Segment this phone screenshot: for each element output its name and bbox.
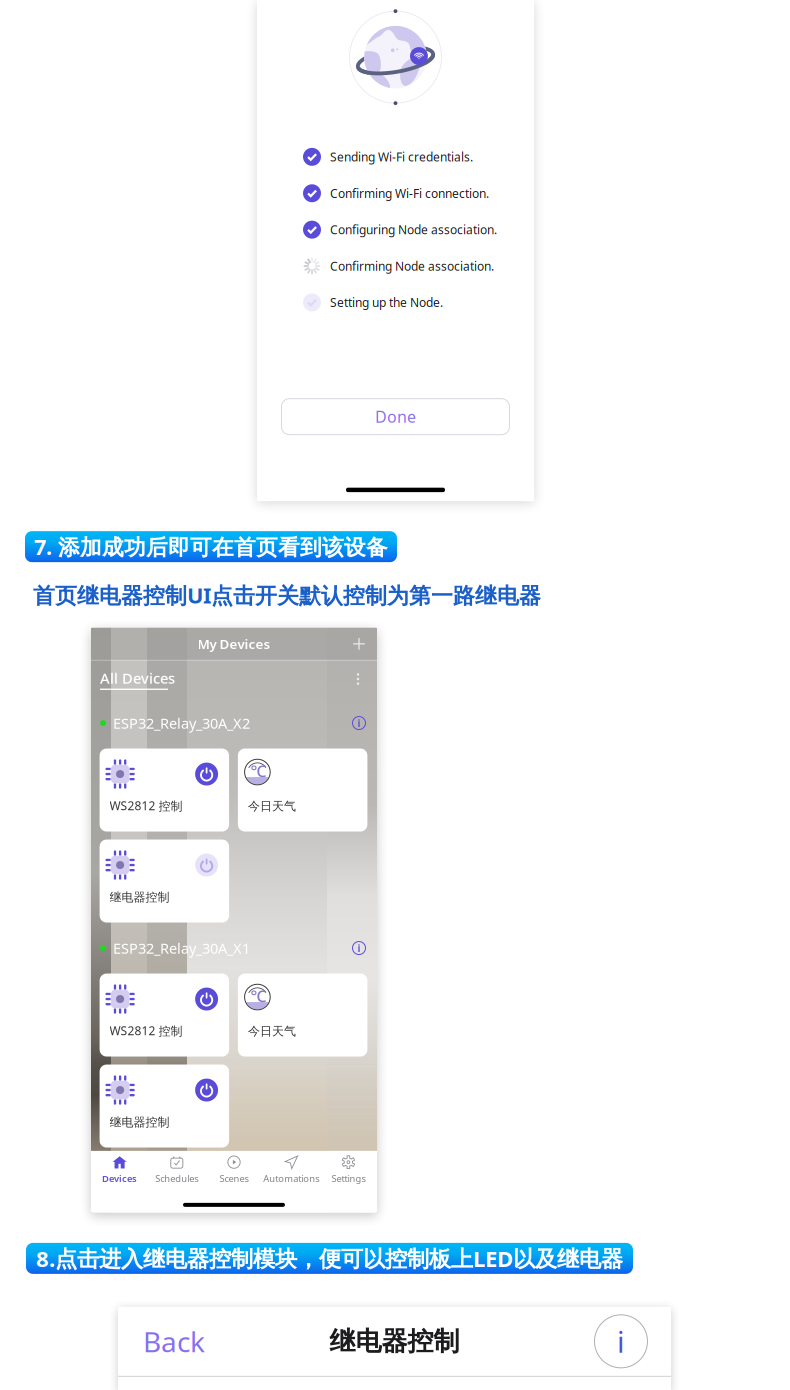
staticText: Devices [102,1172,137,1184]
staticText: Schedules [155,1172,198,1184]
button[interactable]: 继电器控制 [100,839,229,922]
button[interactable]: Done [281,399,509,435]
button[interactable]: Settings [320,1155,377,1184]
staticText: 继电器控制 [110,890,170,904]
staticText: My Devices [197,635,270,653]
staticText: ESP32_Relay_30A_X2 [113,713,250,733]
staticText: Confirming Node association. [330,258,494,274]
button[interactable]: More options [347,668,369,690]
staticText: 今日天气 [248,1024,296,1038]
button[interactable]: ℃ [238,748,367,831]
staticText: 继电器控制 [110,1115,170,1129]
staticText: Confirming Wi-Fi connection. [330,185,489,201]
staticText: 7. 添加成功后即可在首页看到该设备 [34,532,388,561]
staticText: Sending Wi-Fi credentials. [330,149,473,165]
button[interactable]: ℃ [238,973,367,1056]
staticText: Done [375,406,416,427]
staticText: 首页继电器控制UI点击开关默认控制为第一路继电器 [33,580,541,610]
staticText: 继电器控制 [329,1325,459,1358]
staticText: Setting up the Node. [330,294,443,310]
staticText: Configuring Node association. [330,222,497,238]
button[interactable]: Automations [263,1155,320,1184]
button[interactable]: All Devices [100,668,168,690]
button[interactable]: Devices [91,1155,148,1184]
button[interactable]: WS2812 控制 [100,973,229,1056]
staticText: ℃ [251,985,267,1006]
button[interactable]: 继电器控制 [100,1064,229,1147]
button[interactable]: Device info [350,939,368,957]
staticText: WS2812 控制 [110,797,183,813]
button[interactable]: Scenes [205,1155,263,1184]
button[interactable]: WS2812 控制 [100,748,229,831]
staticText: Back [143,1322,205,1360]
staticText: WS2812 控制 [110,1022,183,1038]
staticText: Settings [331,1172,365,1184]
staticText: ESP32_Relay_30A_X1 [113,938,250,958]
button[interactable]: Schedules [148,1155,205,1184]
staticText: i [357,941,360,955]
staticText: i [357,716,360,730]
button[interactable]: Device info [350,714,368,732]
button[interactable]: Back [143,1322,205,1360]
staticText: i [617,1321,625,1361]
staticText: All Devices [100,668,175,688]
button[interactable]: Info [593,1313,649,1369]
staticText: ℃ [251,760,267,781]
staticText: 今日天气 [248,799,296,813]
staticText: 8.点击进入继电器控制模块，便可以控制板上LED以及继电器 [36,1243,623,1273]
staticText: Scenes [219,1172,248,1184]
staticText: Automations [263,1172,319,1184]
button[interactable]: Add device [348,633,370,655]
